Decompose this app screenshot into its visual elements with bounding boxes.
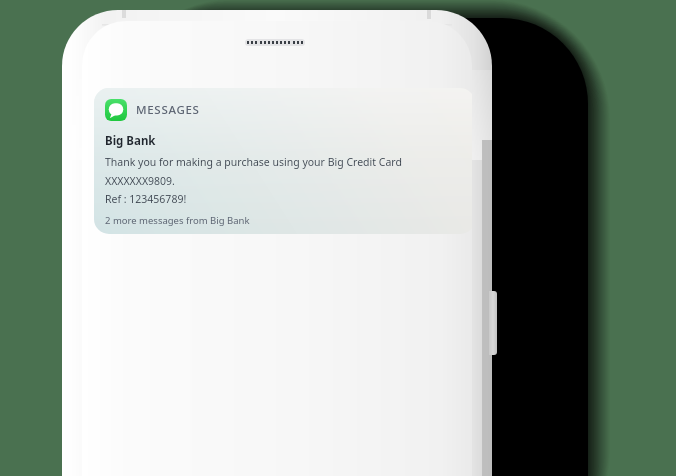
button[interactable]: Messages app icon <box>105 99 200 121</box>
other: Power button <box>489 291 497 355</box>
other: Messages app icon <box>105 99 127 121</box>
staticText: Big Bank <box>105 133 156 149</box>
staticText: Thank you for making a purchase using yo… <box>105 155 402 169</box>
button[interactable]: Messages app icon <box>94 88 472 234</box>
staticText: 2 more messages from Big Bank <box>105 214 250 227</box>
staticText: MESSAGES <box>136 102 200 118</box>
staticText: XXXXXXX9809. <box>105 174 175 188</box>
staticText: Ref : 123456789! <box>105 192 187 206</box>
